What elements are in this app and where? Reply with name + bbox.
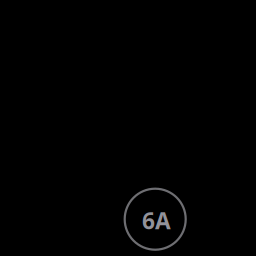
staticText: 6A <box>142 205 171 235</box>
button[interactable]: Route 6A <box>125 189 186 250</box>
